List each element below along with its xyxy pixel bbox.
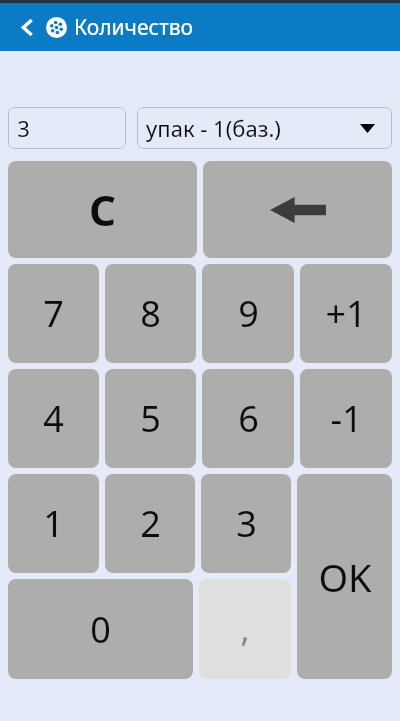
button[interactable]: Backspace — [203, 161, 392, 258]
staticText: 8 — [140, 289, 161, 338]
staticText: , — [240, 606, 250, 652]
staticText: 2 — [140, 499, 161, 548]
button[interactable]: 6 — [202, 369, 294, 468]
staticText: 3 — [17, 113, 30, 143]
button[interactable]: +1 — [300, 264, 392, 363]
staticText: -1 — [330, 394, 363, 443]
button[interactable]: OK — [297, 474, 392, 679]
button[interactable]: 4 — [8, 369, 99, 468]
button[interactable]: 2 — [105, 474, 195, 573]
staticText: 4 — [43, 394, 64, 443]
button[interactable]: 3 — [8, 107, 126, 149]
button[interactable]: 0 — [8, 579, 193, 679]
staticText: 1 — [43, 499, 64, 548]
button[interactable]: C — [8, 161, 197, 258]
button[interactable]: -1 — [300, 369, 392, 468]
button[interactable]: 9 — [202, 264, 294, 363]
button[interactable]: 1 — [8, 474, 99, 573]
staticText: 5 — [140, 394, 161, 443]
button[interactable]: 7 — [8, 264, 99, 363]
staticText: 6 — [238, 394, 259, 443]
staticText: Количество — [74, 13, 193, 42]
staticText: C — [89, 181, 116, 238]
staticText: +1 — [325, 289, 367, 338]
button[interactable]: 5 — [105, 369, 196, 468]
button[interactable]: 3 — [201, 474, 291, 573]
staticText: упак - 1(баз.) — [146, 113, 281, 143]
staticText: OK — [318, 551, 372, 603]
staticText: 3 — [236, 499, 257, 548]
staticText: 7 — [43, 289, 64, 338]
staticText: 9 — [238, 289, 259, 338]
button[interactable]: , — [199, 579, 291, 679]
button[interactable]: 8 — [105, 264, 196, 363]
staticText: 0 — [90, 605, 111, 654]
button[interactable]: упак - 1(баз.) — [137, 107, 392, 149]
button[interactable]: Back — [11, 11, 43, 43]
